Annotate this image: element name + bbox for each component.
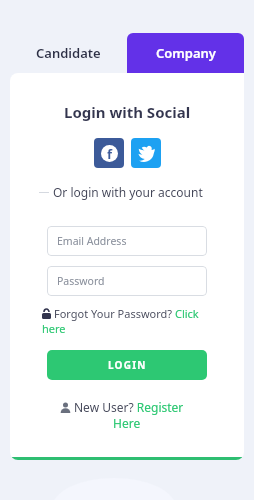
button[interactable]: Forgot Your Password? Click bbox=[42, 306, 202, 336]
staticText: Company bbox=[156, 44, 216, 62]
button[interactable]: Candidate bbox=[10, 33, 127, 73]
staticText: Login with Social bbox=[64, 102, 191, 122]
button[interactable]: Company bbox=[127, 33, 244, 73]
button[interactable]: New User? Register bbox=[65, 399, 189, 431]
staticText: here bbox=[42, 321, 66, 336]
button[interactable]: Password bbox=[47, 266, 207, 296]
staticText: Candidate bbox=[36, 44, 101, 62]
staticText: Here bbox=[113, 415, 141, 431]
staticText: Email Address bbox=[57, 234, 127, 248]
staticText: New User? Register bbox=[74, 399, 184, 415]
button[interactable]: Email Address bbox=[47, 226, 207, 256]
button[interactable]: LOGIN bbox=[47, 350, 207, 380]
staticText: Or login with your account bbox=[53, 184, 203, 200]
staticText: LOGIN bbox=[108, 358, 147, 372]
staticText: Forgot Your Password? Click bbox=[54, 306, 199, 321]
staticText: Password bbox=[57, 274, 105, 288]
button[interactable] bbox=[131, 138, 161, 168]
button[interactable]: f bbox=[94, 138, 124, 168]
staticText: f bbox=[107, 145, 113, 162]
